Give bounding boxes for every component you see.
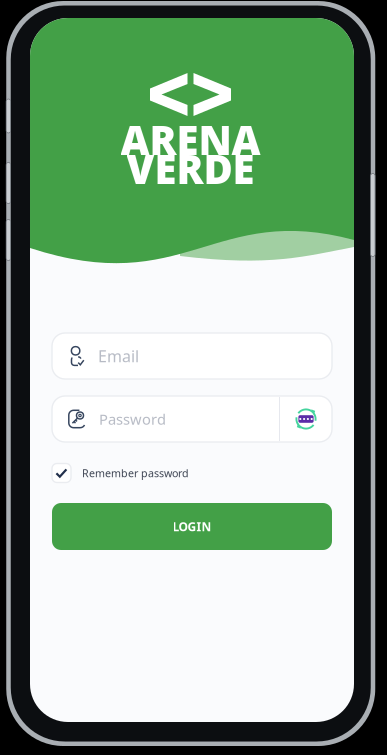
staticText: Email — [98, 345, 139, 367]
button[interactable]: Remember password — [52, 461, 332, 485]
staticText: VERDE — [126, 142, 254, 195]
button[interactable]: LOGIN — [52, 503, 332, 550]
staticText: Remember password — [82, 466, 189, 480]
staticText: ARENA — [120, 113, 260, 166]
staticText: Password — [99, 409, 166, 429]
button[interactable]: Generate password — [280, 396, 332, 442]
staticText: LOGIN — [172, 518, 211, 534]
